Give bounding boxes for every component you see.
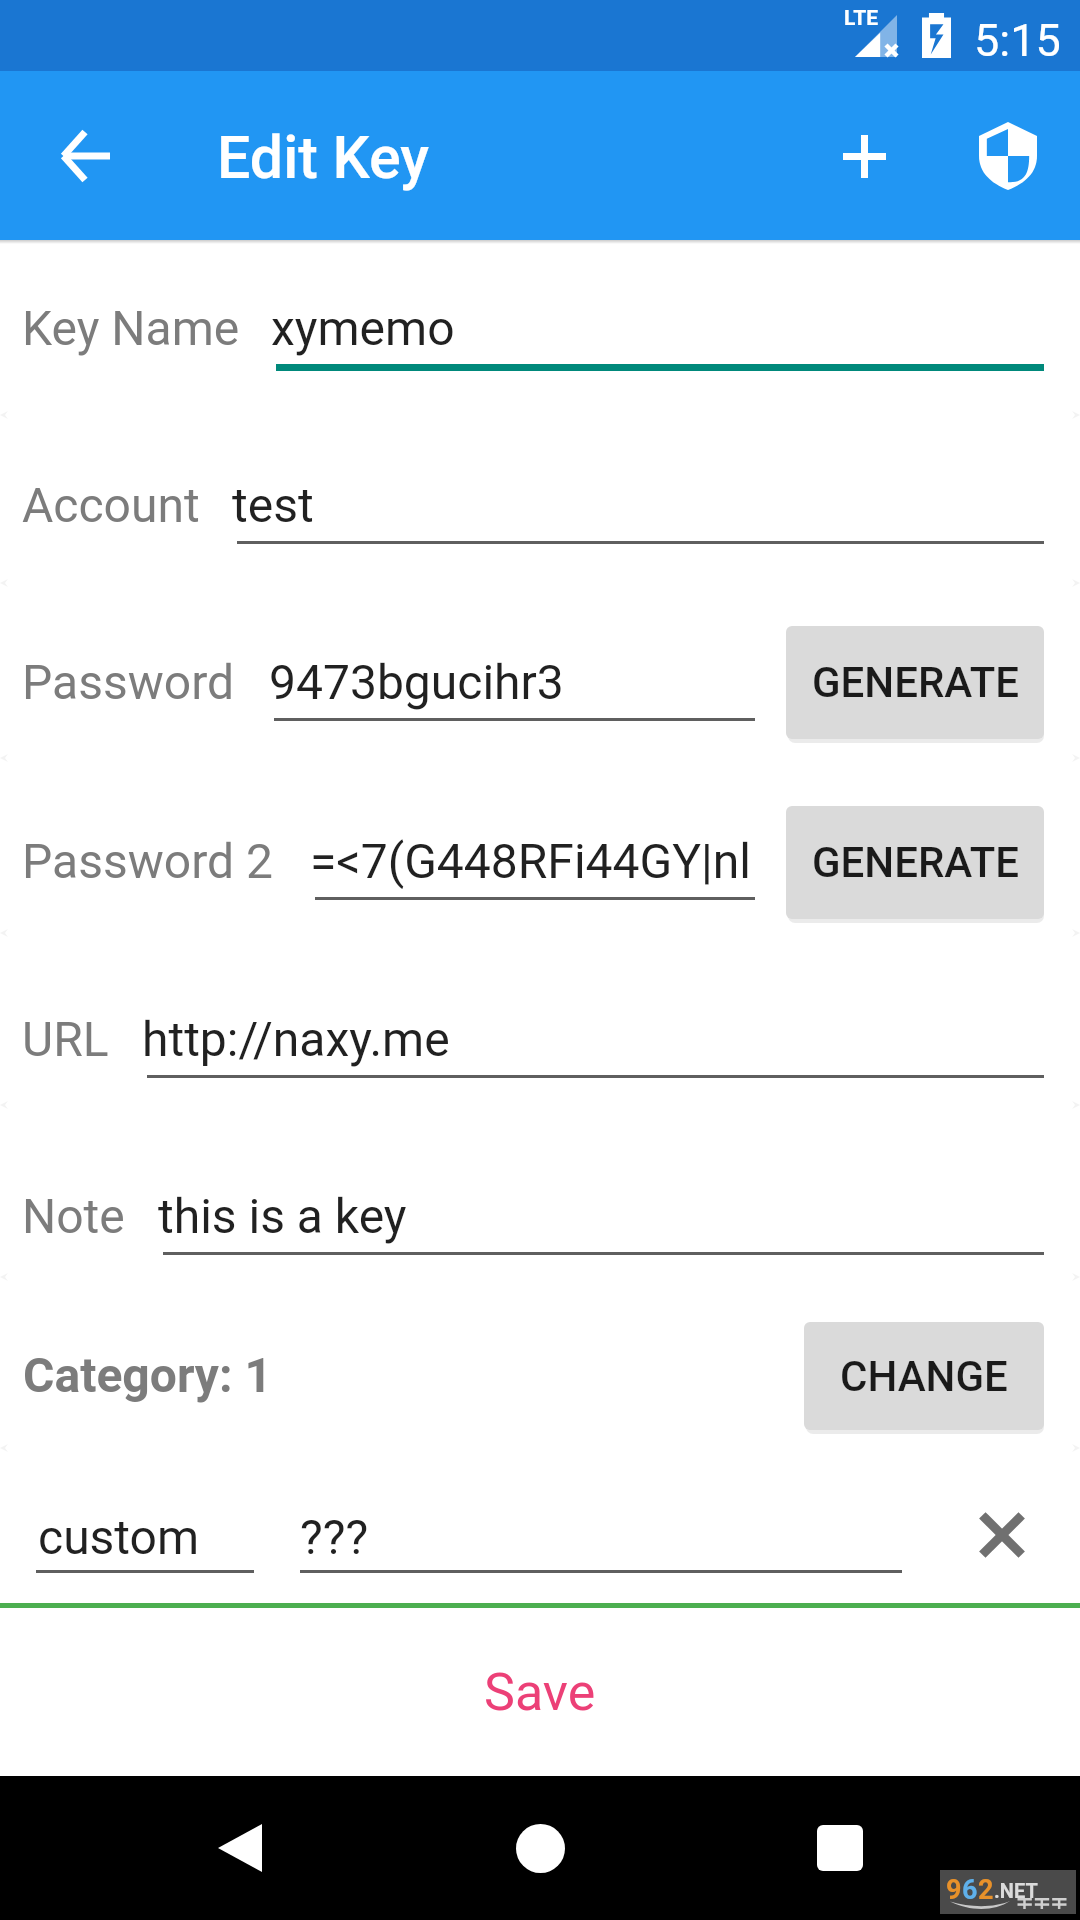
button[interactable]: GENERATE	[786, 806, 1044, 919]
staticText: xymemo	[271, 300, 455, 356]
staticText: GENERATE	[812, 658, 1019, 707]
button[interactable]: Remove custom field	[957, 1490, 1047, 1580]
button[interactable]: Recent apps	[785, 1776, 895, 1920]
staticText: Password	[22, 654, 235, 710]
button[interactable]: Save	[0, 1608, 1080, 1776]
staticText: URL	[22, 1011, 109, 1067]
staticText: 9473bgucihr3	[269, 654, 564, 710]
staticText: this is a key	[158, 1188, 407, 1244]
staticText: 9	[946, 1874, 962, 1906]
staticText: 5:15	[974, 14, 1061, 67]
staticText: custom	[38, 1509, 200, 1565]
staticText: test	[232, 477, 314, 533]
staticText: =<7(G448RFi44GY|nl	[310, 833, 751, 889]
staticText: Key Name	[22, 300, 240, 356]
staticText: Password 2	[22, 833, 273, 889]
button[interactable]: Back	[185, 1776, 295, 1920]
staticText: LTE	[844, 6, 879, 31]
staticText: .NET	[994, 1879, 1038, 1902]
staticText: GENERATE	[812, 838, 1019, 887]
staticText: Note	[22, 1188, 125, 1244]
button[interactable]: Home	[485, 1776, 595, 1920]
staticText: 6	[962, 1874, 978, 1906]
button[interactable]: GENERATE	[786, 626, 1044, 739]
staticText: Save	[484, 1662, 596, 1723]
button[interactable]: Security	[953, 101, 1063, 211]
staticText: http://naxy.me	[142, 1011, 450, 1067]
staticText: Edit Key	[217, 123, 430, 192]
staticText: 2	[978, 1874, 994, 1906]
button[interactable]: CHANGE	[804, 1322, 1044, 1430]
staticText: ???	[300, 1509, 369, 1565]
button[interactable]: Add	[809, 101, 919, 211]
button[interactable]: Navigate up	[25, 96, 145, 216]
staticText: Category: 1	[23, 1347, 272, 1403]
staticText: Account	[22, 477, 200, 533]
staticText: CHANGE	[840, 1352, 1008, 1401]
